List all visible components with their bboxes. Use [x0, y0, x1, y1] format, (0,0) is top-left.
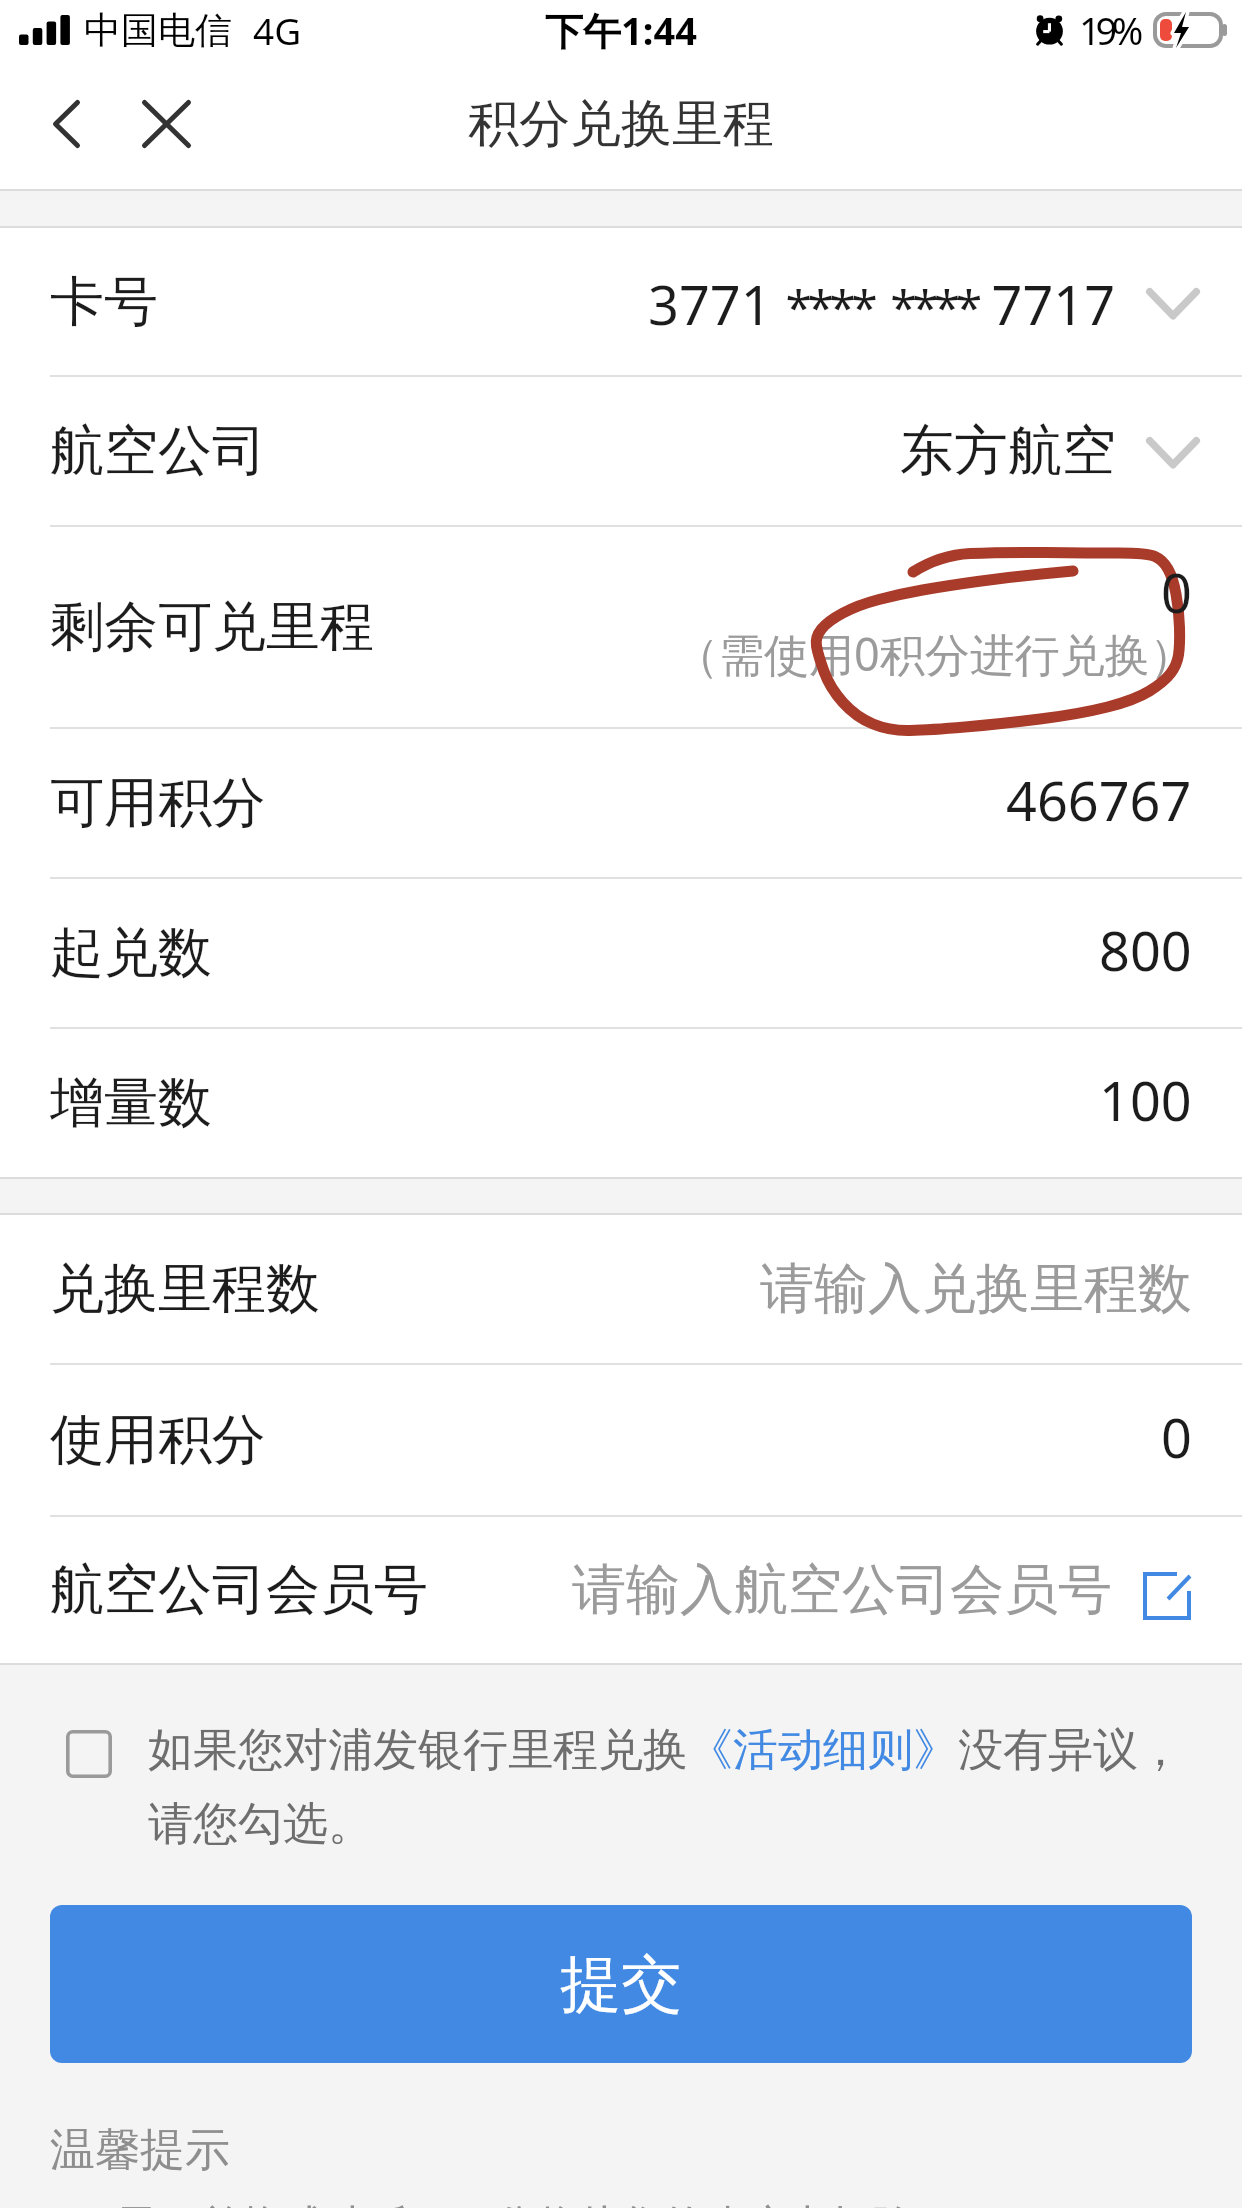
button[interactable]: 使用积分	[0, 1365, 1242, 1515]
staticText: 使用积分	[50, 1406, 266, 1474]
staticText: 卡号	[50, 268, 158, 336]
staticText: 可用积分	[50, 769, 266, 837]
staticText: 温馨提示	[50, 2122, 230, 2179]
button[interactable]: 可用积分	[0, 729, 1242, 877]
staticText: 增量数	[50, 1069, 212, 1137]
staticText: 兑换里程数	[50, 1255, 320, 1323]
button[interactable]: 增量数	[0, 1029, 1242, 1177]
button[interactable]: 起兑数	[0, 879, 1242, 1027]
staticText: 4G	[253, 5, 302, 55]
staticText: 0	[1161, 1400, 1192, 1474]
staticText: 800	[1099, 913, 1192, 987]
button[interactable]: 航空公司	[0, 377, 1242, 525]
button[interactable]: 兑换里程数	[0, 1215, 1242, 1363]
staticText: 中国电信	[84, 7, 232, 54]
staticText: 积分兑换里程	[468, 92, 774, 156]
staticText: 如果您对浦发银行里程兑换《活动细则》没有异议，请您勾选。	[148, 1722, 1192, 1852]
staticText: 东方航空	[900, 417, 1116, 485]
staticText: 0	[1161, 555, 1192, 629]
button[interactable]: 航空公司会员号	[0, 1517, 1242, 1663]
staticText: 起兑数	[50, 919, 212, 987]
staticText: 请输入航空公司会员号	[572, 1556, 1112, 1624]
button[interactable]: 剩余可兑里程	[0, 527, 1242, 727]
staticText: 提交	[560, 1946, 682, 2023]
button[interactable]: 卡号	[0, 228, 1242, 375]
staticText: 100	[1099, 1063, 1192, 1137]
button[interactable]: 返回	[22, 80, 110, 168]
button[interactable]: 关闭	[122, 80, 210, 168]
button[interactable]: 编辑航空公司会员号	[1139, 1568, 1195, 1624]
staticText: 1、里程兑换成功后，积分将从您的账户中扣除，	[50, 2195, 957, 2208]
staticText: 3771 **** **** 7717	[648, 254, 1116, 344]
staticText: 下午1:44	[545, 4, 697, 56]
staticText: 466767	[1006, 763, 1192, 837]
staticText: （需使用0积分进行兑换）	[674, 623, 1195, 684]
button[interactable]: 提交	[50, 1905, 1192, 2063]
staticText: 19%	[1079, 4, 1139, 56]
staticText: 请输入兑换里程数	[760, 1255, 1192, 1323]
button[interactable]: 如果您对浦发银行里程兑换《活动细则》没有异议，请您勾选。	[66, 1722, 1192, 1852]
staticText: 航空公司会员号	[50, 1556, 428, 1624]
staticText: 剩余可兑里程	[50, 593, 374, 661]
staticText: 航空公司	[50, 417, 266, 485]
